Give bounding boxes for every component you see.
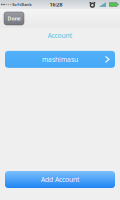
- staticText: 16:28: [49, 1, 62, 8]
- button[interactable]: Add Account: [5, 171, 115, 188]
- staticText: Done: [7, 15, 20, 22]
- staticText: mashimasu: [42, 55, 78, 64]
- staticText: Account: [47, 31, 72, 40]
- staticText: SoftBank: [12, 2, 31, 7]
- button[interactable]: mashimasu: [5, 51, 115, 68]
- staticText: Add Account: [41, 175, 79, 184]
- button[interactable]: Done: [4, 12, 24, 25]
